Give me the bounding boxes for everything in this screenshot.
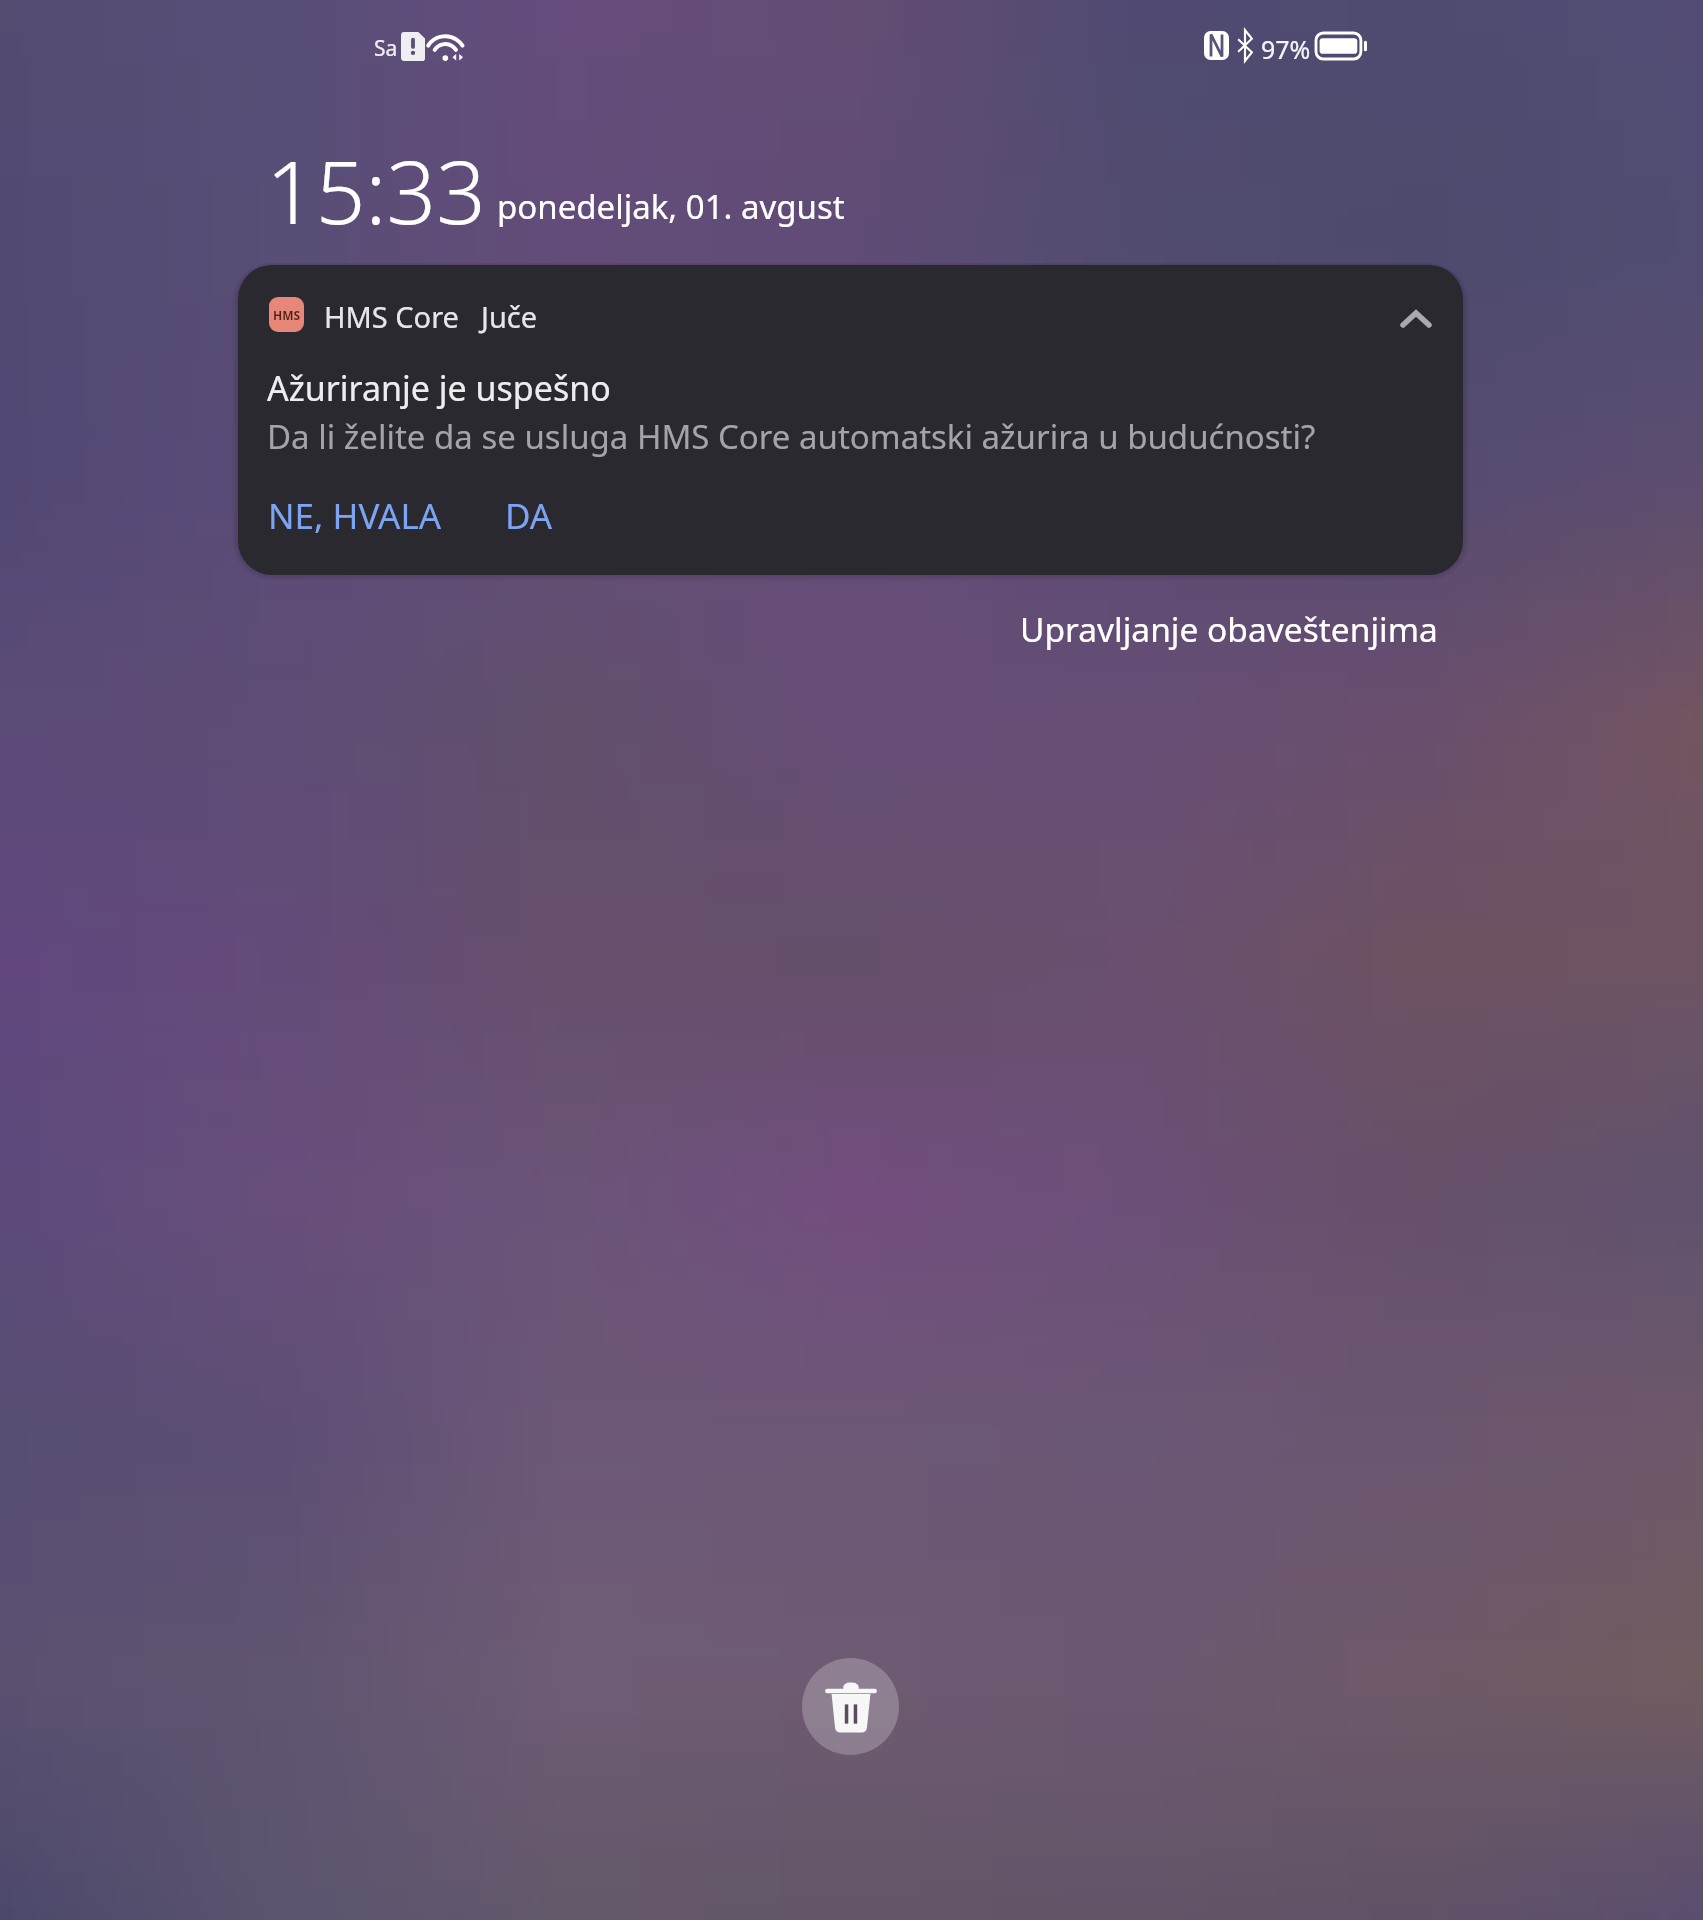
button[interactable]: Upravljanje obaveštenjima	[1012, 598, 1446, 660]
staticText: ponedeljak, 01. avgust	[497, 184, 845, 229]
staticText: Da li želite da se usluga HMS Core autom…	[267, 414, 1316, 459]
button[interactable]: Clear all notifications	[802, 1658, 899, 1755]
staticText: HMS Core	[324, 297, 459, 336]
button[interactable]: HMS	[238, 265, 1463, 575]
staticText: 97%	[1261, 32, 1311, 66]
staticText: Sa	[374, 34, 398, 63]
staticText: Ažuriranje je uspešno	[267, 365, 611, 411]
staticText: Juče	[481, 297, 538, 336]
staticText: Upravljanje obaveštenjima	[1020, 606, 1438, 652]
staticText: HMS	[273, 307, 301, 323]
button[interactable]: DA	[497, 486, 561, 546]
button[interactable]: NE, HVALA	[260, 486, 450, 546]
staticText: 15:33	[266, 131, 486, 249]
button[interactable]: Collapse notification	[1378, 281, 1454, 357]
staticText: NE, HVALA	[268, 492, 442, 540]
staticText: DA	[505, 492, 553, 540]
